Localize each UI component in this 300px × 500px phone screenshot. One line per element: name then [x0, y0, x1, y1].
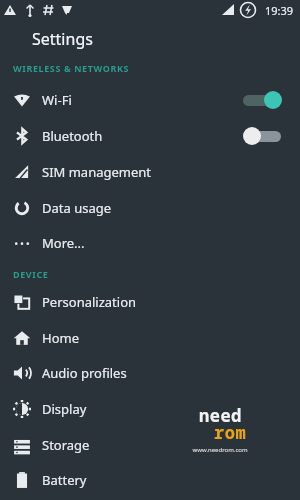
staticText: Data usage [42, 199, 112, 217]
button[interactable]: Personalization [0, 284, 300, 320]
button[interactable]: Audio profiles [0, 355, 300, 391]
staticText: www.needrom.com [192, 446, 248, 454]
staticText: Bluetooth [42, 127, 103, 145]
button[interactable]: Display [0, 391, 300, 427]
button[interactable]: More... [0, 225, 300, 261]
staticText: More... [42, 234, 85, 252]
staticText: need [199, 404, 242, 427]
staticText: SIM management [42, 163, 152, 181]
button[interactable]: Battery [0, 462, 300, 498]
staticText: Home [42, 329, 79, 347]
button[interactable]: Home [0, 320, 300, 356]
button[interactable]: Data usage [0, 190, 300, 226]
staticText: WIRELESS & NETWORKS [13, 62, 130, 74]
staticText: Settings [32, 28, 93, 50]
button[interactable]: Storage [0, 427, 300, 463]
button[interactable]: SIM management [0, 154, 300, 190]
staticText: Wi-Fi [42, 91, 72, 109]
staticText: 19:39 [265, 3, 294, 18]
button[interactable]: Wi-Fi [0, 82, 300, 118]
staticText: Personalization [42, 293, 137, 311]
staticText: Audio profiles [42, 364, 127, 382]
staticText: DEVICE [13, 268, 49, 280]
staticText: Storage [42, 436, 90, 454]
button[interactable]: Bluetooth [0, 118, 300, 154]
staticText: Battery [42, 471, 87, 489]
staticText: rom [214, 421, 247, 444]
staticText: Display [42, 400, 87, 418]
